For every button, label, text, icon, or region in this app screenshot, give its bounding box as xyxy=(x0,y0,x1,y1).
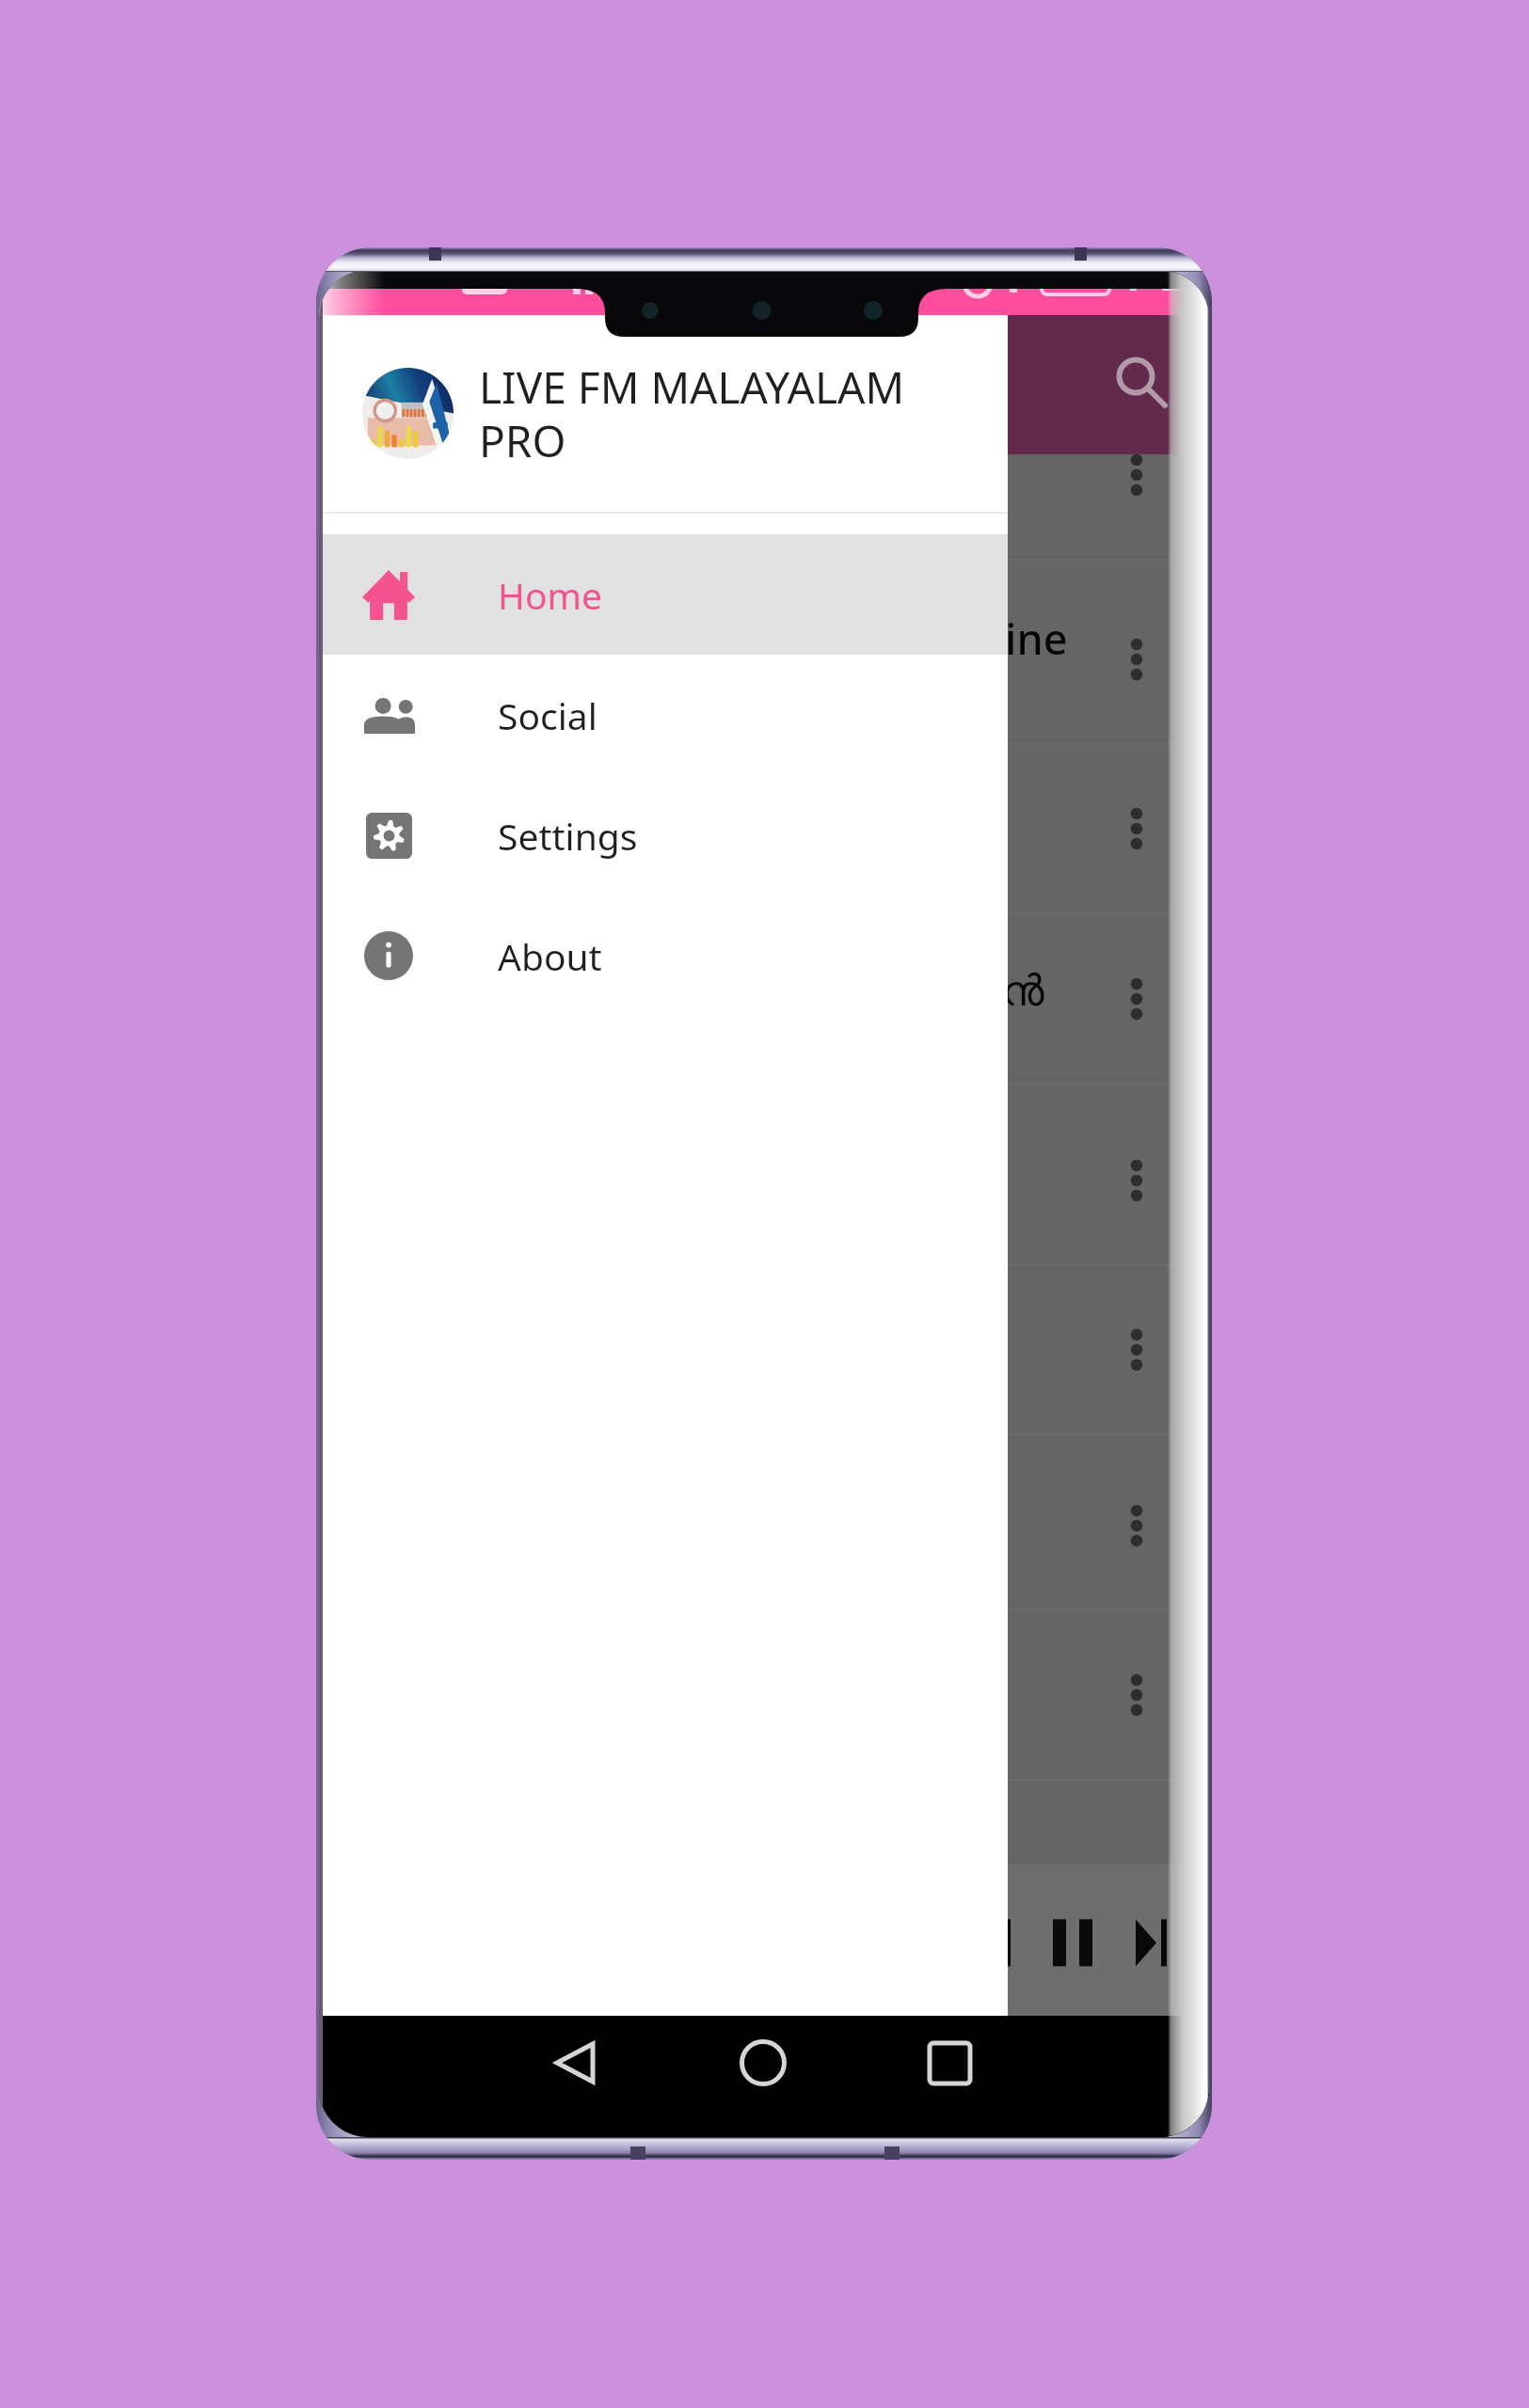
staticText: ന്‍ xyxy=(1001,971,1044,1014)
button[interactable]: More options xyxy=(1104,1662,1170,1728)
staticText: Malayalam Online xyxy=(702,610,1068,667)
button[interactable]: Back xyxy=(507,2016,642,2137)
staticText: LIVE FM MALAYALAM PRO xyxy=(479,357,987,469)
staticText: Social xyxy=(498,690,597,740)
staticText: Settings xyxy=(498,811,638,861)
button[interactable]: Home xyxy=(695,2016,830,2137)
staticText: About xyxy=(498,931,602,981)
button[interactable]: More options xyxy=(1104,1317,1170,1383)
button[interactable]: Social xyxy=(319,655,1008,775)
button[interactable]: More options xyxy=(1104,796,1170,862)
button[interactable]: Search xyxy=(1091,331,1181,421)
button[interactable]: More options xyxy=(1104,1493,1170,1559)
button[interactable]: More options xyxy=(1104,966,1170,1032)
button[interactable]: More options xyxy=(1104,1148,1170,1213)
button[interactable]: Recent apps xyxy=(881,2016,1015,2137)
button[interactable]: More options xyxy=(1104,626,1170,692)
button[interactable]: LIVE FM MALAYALAM PRO xyxy=(319,315,1008,512)
button[interactable]: About xyxy=(319,895,1008,1016)
button[interactable]: Settings xyxy=(319,775,1008,895)
button[interactable]: Home xyxy=(319,534,1008,655)
button[interactable]: More options xyxy=(1104,442,1170,508)
staticText: Home xyxy=(498,570,602,620)
